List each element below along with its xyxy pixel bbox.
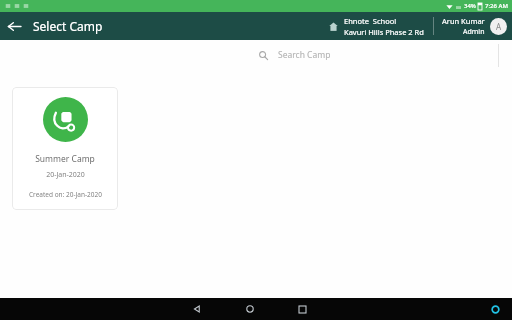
button[interactable]: Home bbox=[239, 298, 261, 320]
other: School bbox=[328, 21, 339, 32]
staticText: 7:26 AM bbox=[485, 2, 508, 10]
staticText: Search Camp bbox=[278, 49, 331, 61]
staticText: Admin bbox=[463, 27, 485, 37]
button[interactable]: Assistant bbox=[484, 298, 506, 320]
staticText: Created on: 20-Jan-2020 bbox=[29, 190, 102, 199]
button[interactable]: School bbox=[325, 16, 427, 37]
staticText: Ehnote School bbox=[344, 16, 397, 26]
button[interactable]: Search Camp bbox=[278, 40, 498, 70]
button[interactable]: Back bbox=[0, 12, 28, 40]
staticText: Kavuri Hills Phase 2 Rd bbox=[344, 27, 424, 37]
button[interactable]: Arun Kumar bbox=[442, 16, 512, 37]
button[interactable]: Summer Camp bbox=[12, 87, 118, 210]
staticText: Summer Camp bbox=[35, 153, 95, 165]
staticText: 34% bbox=[464, 2, 476, 10]
staticText: Arun Kumar bbox=[442, 16, 485, 26]
staticText: A bbox=[496, 21, 502, 32]
staticText: Select Camp bbox=[33, 18, 103, 34]
staticText: 20-Jan-2020 bbox=[46, 170, 85, 180]
button[interactable]: Back bbox=[186, 298, 208, 320]
other: Search bbox=[259, 51, 268, 60]
button[interactable]: Recent apps bbox=[291, 298, 313, 320]
